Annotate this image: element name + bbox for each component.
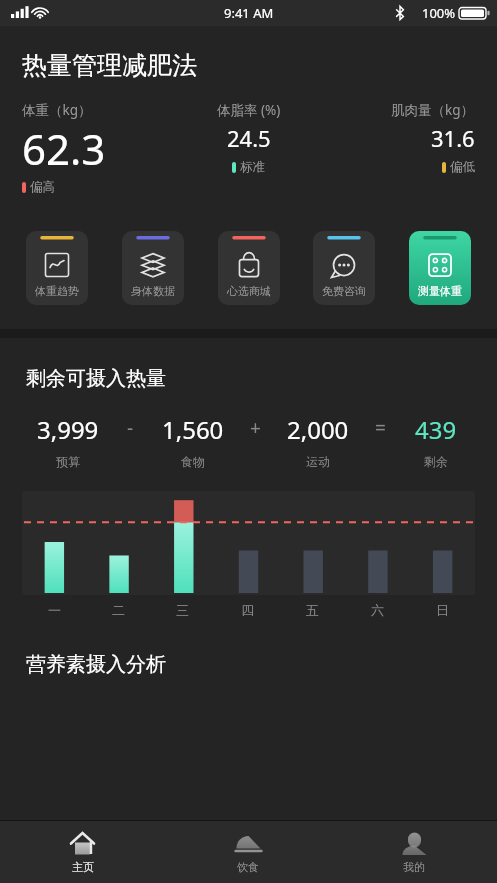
other: 主页 bbox=[69, 831, 96, 858]
staticText: 439 bbox=[415, 413, 457, 446]
staticText: - bbox=[127, 415, 134, 441]
staticText: 体重趋势 bbox=[35, 284, 79, 298]
other: 饮食 bbox=[235, 831, 262, 858]
staticText: 二 bbox=[112, 602, 125, 618]
staticText: 剩余可摄入热量 bbox=[26, 366, 166, 391]
button[interactable]: 体重趋势 bbox=[26, 231, 88, 305]
button[interactable]: 免费咨询 bbox=[313, 231, 375, 305]
staticText: 食物 bbox=[181, 454, 205, 469]
staticText: + bbox=[250, 415, 261, 441]
staticText: 体脂率 (%) bbox=[217, 101, 281, 119]
staticText: 剩余 bbox=[424, 454, 448, 469]
button[interactable]: 饮食 bbox=[165, 821, 331, 883]
staticText: 62.3 bbox=[22, 120, 106, 177]
staticText: 9:41 AM bbox=[224, 4, 274, 22]
staticText: 六 bbox=[371, 602, 384, 618]
staticText: 主页 bbox=[72, 860, 94, 874]
staticText: 五 bbox=[306, 602, 319, 618]
staticText: 肌肉量（kg） bbox=[391, 101, 475, 119]
staticText: 三 bbox=[176, 602, 189, 618]
staticText: 四 bbox=[241, 602, 254, 618]
staticText: = bbox=[375, 415, 386, 441]
staticText: 营养素摄入分析 bbox=[26, 652, 166, 677]
button[interactable]: 我的 bbox=[331, 821, 497, 883]
staticText: 体重（kg） bbox=[22, 101, 92, 119]
staticText: 3,999 bbox=[37, 413, 99, 446]
staticText: 饮食 bbox=[237, 860, 259, 874]
staticText: 1,560 bbox=[162, 413, 224, 446]
staticText: 31.6 bbox=[431, 123, 475, 153]
button[interactable]: 测量体重 bbox=[409, 231, 471, 305]
staticText: 100% bbox=[422, 4, 456, 22]
staticText: 预算 bbox=[56, 454, 80, 469]
staticText: 我的 bbox=[403, 860, 425, 874]
staticText: 日 bbox=[436, 602, 449, 618]
staticText: 标准 bbox=[240, 159, 265, 175]
other: 我的 bbox=[401, 831, 428, 858]
button[interactable]: 心选商城 bbox=[218, 231, 280, 305]
staticText: 测量体重 bbox=[418, 284, 462, 298]
button[interactable]: 主页 bbox=[0, 821, 165, 883]
staticText: 热量管理减肥法 bbox=[22, 50, 197, 81]
staticText: 一 bbox=[48, 602, 61, 618]
staticText: 偏低 bbox=[450, 159, 475, 175]
staticText: 运动 bbox=[306, 454, 330, 469]
button[interactable]: 身体数据 bbox=[122, 231, 184, 305]
staticText: 24.5 bbox=[227, 123, 271, 153]
staticText: 免费咨询 bbox=[322, 284, 366, 298]
staticText: 心选商城 bbox=[227, 284, 271, 298]
staticText: 偏高 bbox=[30, 179, 55, 195]
staticText: 身体数据 bbox=[131, 284, 175, 298]
staticText: 2,000 bbox=[287, 413, 349, 446]
